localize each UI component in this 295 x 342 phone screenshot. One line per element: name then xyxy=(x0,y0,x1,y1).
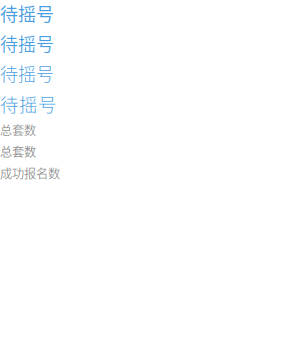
staticText: 待摇号 xyxy=(0,60,54,86)
staticText: 成功报名数 xyxy=(0,164,60,182)
staticText: 总套数 xyxy=(0,121,36,139)
staticText: 总套数 xyxy=(0,143,36,160)
staticText: 待摇号 xyxy=(0,90,57,117)
staticText: 待摇号 xyxy=(0,0,54,26)
staticText: 待摇号 xyxy=(0,30,54,56)
